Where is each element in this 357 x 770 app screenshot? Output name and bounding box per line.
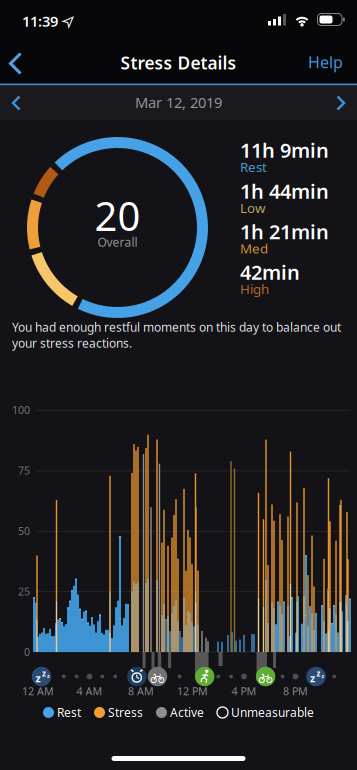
staticText: z [42, 668, 46, 679]
staticText: z [316, 668, 320, 679]
staticText: Rest [240, 158, 267, 176]
staticText: High [240, 280, 269, 298]
staticText: 25 [18, 584, 30, 598]
staticText: Med [240, 239, 268, 257]
staticText: 0 [24, 645, 30, 659]
staticText: 20 [94, 189, 140, 242]
staticText: 1h 21min [240, 218, 329, 245]
staticText: 4 PM [231, 684, 256, 698]
staticText: Low [240, 199, 265, 217]
staticText: Unmeasurable [231, 704, 314, 720]
staticText: 11h 9min [240, 137, 329, 163]
staticText: 4 AM [76, 684, 102, 698]
staticText: z [310, 671, 315, 685]
button[interactable]: Next day [0, 0, 40, 34]
staticText: Active [170, 704, 204, 720]
staticText: 12 PM [177, 684, 208, 698]
staticText: 8 PM [283, 684, 308, 698]
staticText: 50 [18, 524, 30, 538]
staticText: your stress reactions. [12, 335, 132, 351]
staticText: z [47, 672, 50, 680]
staticText: You had enough restful moments on this d… [12, 319, 341, 335]
button[interactable]: Back [0, 0, 44, 36]
button[interactable]: Help [308, 51, 343, 73]
staticText: 100 [12, 403, 30, 417]
staticText: 8 AM [128, 684, 154, 698]
staticText: Help [308, 51, 343, 73]
staticText: Mar 12, 2019 [135, 92, 222, 112]
button[interactable]: Previous day [0, 0, 40, 34]
staticText: 1h 44min [240, 178, 329, 204]
staticText: 75 [18, 463, 30, 477]
staticText: z [35, 671, 40, 685]
staticText: Stress [108, 704, 143, 720]
staticText: Rest [57, 704, 81, 720]
staticText: 11:39 [22, 11, 58, 31]
staticText: Overall [97, 234, 137, 250]
staticText: 42min [240, 259, 300, 285]
staticText: z [321, 672, 324, 680]
staticText: Stress Details [120, 51, 236, 74]
staticText: 12 AM [22, 684, 54, 698]
